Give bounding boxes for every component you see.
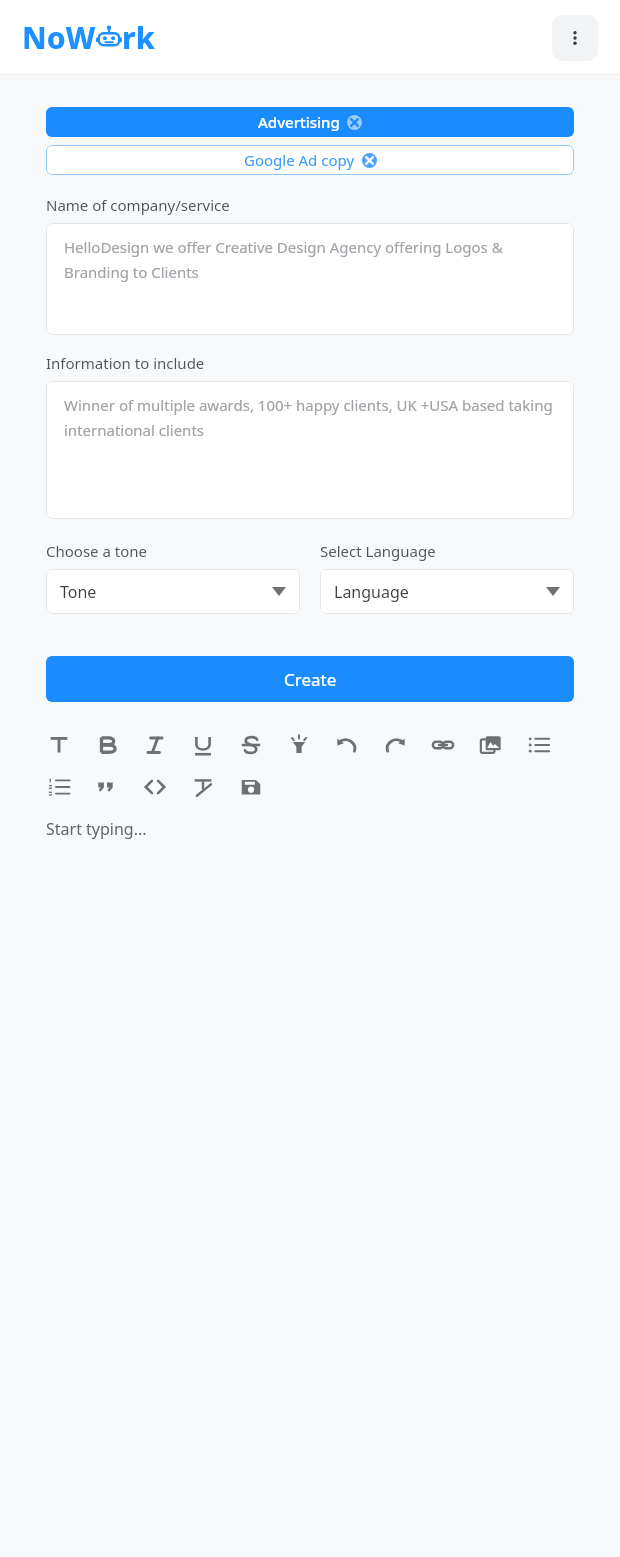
staticText: rk bbox=[122, 17, 155, 58]
button[interactable]: Italic bbox=[142, 732, 168, 758]
button[interactable]: Insert link bbox=[430, 732, 456, 758]
staticText: HelloDesign we offer Creative Design Age… bbox=[64, 237, 556, 282]
staticText: Select Language bbox=[320, 541, 436, 561]
button[interactable]: Bulleted list bbox=[526, 732, 552, 758]
button[interactable]: Bold bbox=[94, 732, 120, 758]
button[interactable]: Create bbox=[46, 656, 574, 702]
button[interactable]: Tone bbox=[46, 569, 300, 614]
button[interactable]: Quote bbox=[94, 774, 120, 800]
button[interactable]: Language bbox=[320, 569, 574, 614]
button[interactable]: Text bbox=[46, 732, 72, 758]
staticText: Start typing... bbox=[46, 818, 147, 840]
button[interactable]: Redo bbox=[382, 732, 408, 758]
staticText: Information to include bbox=[46, 353, 205, 373]
staticText: Choose a tone bbox=[46, 541, 147, 561]
button[interactable]: Numbered list bbox=[46, 774, 72, 800]
staticText: Advertising bbox=[258, 112, 340, 132]
staticText: Name of company/service bbox=[46, 195, 230, 215]
staticText: Tone bbox=[60, 581, 97, 603]
button[interactable]: More options bbox=[552, 15, 598, 61]
staticText: Language bbox=[334, 581, 409, 603]
staticText: Create bbox=[284, 668, 337, 691]
button[interactable]: NoW bbox=[22, 17, 155, 58]
button[interactable]: HelloDesign we offer Creative Design Age… bbox=[46, 223, 574, 335]
button[interactable]: Undo bbox=[334, 732, 360, 758]
button[interactable]: Winner of multiple awards, 100+ happy cl… bbox=[46, 381, 574, 519]
button[interactable]: Advertising bbox=[46, 107, 574, 137]
button[interactable]: Strikethrough bbox=[238, 732, 264, 758]
button[interactable]: Google Ad copy bbox=[46, 145, 574, 175]
staticText: NoW bbox=[22, 17, 96, 58]
button[interactable]: Insert image bbox=[478, 732, 504, 758]
button[interactable]: Clear formatting bbox=[190, 774, 216, 800]
staticText: Google Ad copy bbox=[244, 150, 355, 170]
button[interactable]: Underline bbox=[190, 732, 216, 758]
button[interactable]: Save bbox=[238, 774, 264, 800]
button[interactable]: Highlight bbox=[286, 732, 312, 758]
staticText: Winner of multiple awards, 100+ happy cl… bbox=[64, 395, 556, 440]
button[interactable]: Code bbox=[142, 774, 168, 800]
